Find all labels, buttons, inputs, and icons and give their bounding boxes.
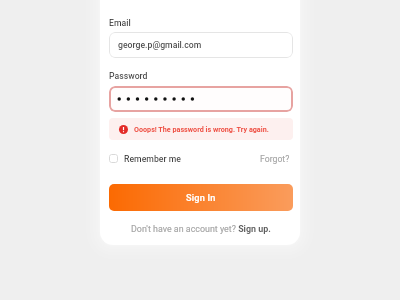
button[interactable]: george.p@gmail.com [109, 32, 293, 58]
staticText: Email [109, 18, 131, 28]
button[interactable] [109, 86, 293, 112]
button[interactable]: Sign In [109, 184, 293, 211]
button[interactable]: Forgot? [260, 154, 293, 164]
staticText: Password [109, 71, 148, 81]
button[interactable]: Remember me [109, 154, 181, 164]
staticText: george.p@gmail.com [118, 40, 202, 50]
staticText: Forgot? [260, 154, 290, 164]
staticText: Sign In [186, 192, 216, 203]
button[interactable]: Don't have an account yet? Sign up. [131, 224, 271, 234]
staticText: Ooops! The password is wrong. Try again. [134, 125, 269, 133]
staticText: Remember me [124, 154, 181, 164]
other: Error [119, 125, 128, 134]
